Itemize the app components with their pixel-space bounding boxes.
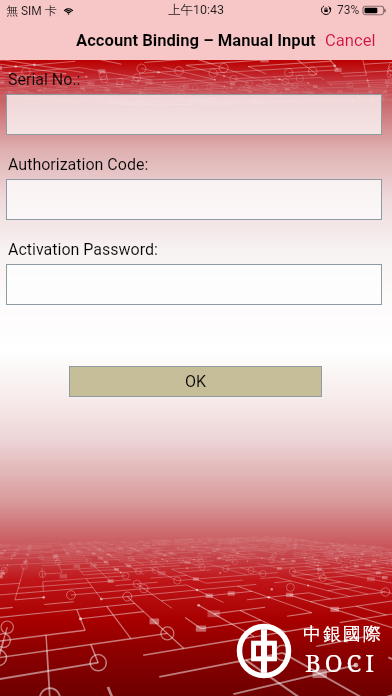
staticText: Authorization Code: bbox=[8, 155, 149, 174]
staticText: Serial No.: bbox=[8, 70, 81, 89]
staticText: BOCI bbox=[305, 646, 379, 679]
button[interactable]: OK bbox=[69, 366, 322, 397]
staticText: Cancel bbox=[325, 31, 376, 50]
staticText: 73% bbox=[337, 3, 360, 17]
staticText: OK bbox=[185, 372, 207, 391]
staticText: Activation Password: bbox=[8, 240, 158, 259]
staticText: 中銀國際 bbox=[302, 623, 382, 646]
button[interactable] bbox=[6, 179, 382, 220]
button[interactable] bbox=[6, 264, 382, 305]
button[interactable]: Cancel bbox=[312, 25, 392, 56]
button[interactable] bbox=[6, 94, 382, 135]
staticText: Account Binding – Manual Input bbox=[76, 31, 316, 50]
staticText: 無 SIM 卡 bbox=[6, 3, 57, 18]
staticText: 上午10:43 bbox=[168, 2, 225, 18]
